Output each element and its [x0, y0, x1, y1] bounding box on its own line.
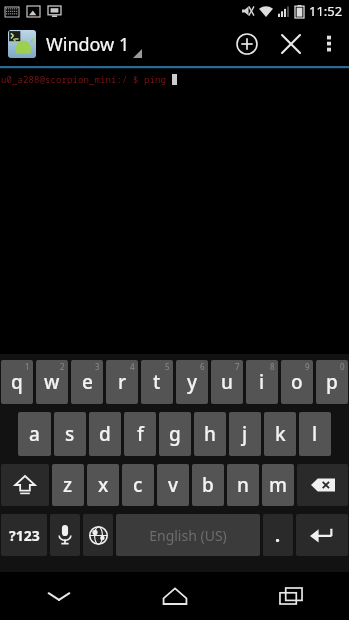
staticText: h: [204, 421, 216, 447]
button[interactable]: Shift: [1, 464, 49, 506]
staticText: 11:52: [309, 2, 343, 20]
staticText: 2: [60, 361, 65, 372]
staticText: 5: [165, 361, 170, 372]
button[interactable]: b: [192, 464, 224, 506]
staticText: 3: [95, 361, 100, 372]
button[interactable]: m: [262, 464, 294, 506]
staticText: d: [99, 421, 111, 447]
button[interactable]: Voice input: [50, 514, 80, 556]
button[interactable]: Enter: [296, 514, 348, 556]
staticText: i: [259, 369, 265, 395]
staticText: b: [202, 472, 214, 498]
button[interactable]: u0_a288@scorpion_mini:/ $ ping: [0, 69, 349, 354]
staticText: x: [98, 472, 109, 498]
button[interactable]: i: [246, 360, 278, 404]
button[interactable]: New window: [225, 22, 269, 66]
button[interactable]: a: [18, 412, 51, 456]
staticText: t: [153, 369, 161, 395]
button[interactable]: ?123: [1, 514, 47, 556]
staticText: c: [133, 472, 143, 498]
staticText: g: [169, 421, 181, 447]
button[interactable]: u: [211, 360, 243, 404]
staticText: e: [82, 369, 93, 395]
staticText: z: [63, 472, 73, 498]
staticText: 1: [25, 361, 30, 372]
staticText: y: [187, 369, 198, 395]
button[interactable]: r: [106, 360, 138, 404]
button[interactable]: n: [227, 464, 259, 506]
staticText: w: [44, 369, 60, 395]
button[interactable]: Window 1: [6, 26, 144, 62]
staticText: n: [237, 472, 249, 498]
button[interactable]: z: [52, 464, 84, 506]
button[interactable]: Home: [117, 572, 233, 620]
button[interactable]: q: [1, 360, 33, 404]
staticText: 6: [200, 361, 205, 372]
staticText: ?123: [9, 526, 40, 545]
button[interactable]: More options: [313, 22, 345, 66]
staticText: English (US): [149, 526, 227, 545]
staticText: 4: [130, 361, 135, 372]
button[interactable]: l: [299, 412, 331, 456]
staticText: v: [168, 472, 179, 498]
staticText: m: [269, 472, 287, 498]
button[interactable]: j: [229, 412, 261, 456]
button[interactable]: Change language: [83, 514, 113, 556]
button[interactable]: Backspace: [297, 464, 348, 506]
button[interactable]: .: [263, 514, 293, 556]
button[interactable]: e: [71, 360, 103, 404]
button[interactable]: k: [264, 412, 296, 456]
button[interactable]: t: [141, 360, 173, 404]
button[interactable]: Recent apps: [233, 572, 349, 620]
staticText: u0_a288@scorpion_mini:/ $ ping: [1, 73, 172, 85]
button[interactable]: w: [36, 360, 68, 404]
staticText: j: [242, 421, 248, 447]
staticText: r: [118, 369, 127, 395]
staticText: f: [137, 421, 144, 447]
staticText: 9: [305, 361, 310, 372]
button[interactable]: s: [54, 412, 86, 456]
staticText: 8: [270, 361, 275, 372]
staticText: q: [11, 369, 23, 395]
button[interactable]: Hide keyboard: [0, 572, 117, 620]
button[interactable]: o: [281, 360, 313, 404]
button[interactable]: English (US): [116, 514, 260, 556]
button[interactable]: f: [124, 412, 156, 456]
button[interactable]: p: [316, 360, 348, 404]
button[interactable]: d: [89, 412, 121, 456]
button[interactable]: v: [157, 464, 189, 506]
button[interactable]: g: [159, 412, 191, 456]
staticText: l: [312, 421, 318, 447]
staticText: p: [326, 369, 338, 395]
button[interactable]: y: [176, 360, 208, 404]
staticText: 7: [235, 361, 240, 372]
button[interactable]: Close window: [269, 22, 313, 66]
button[interactable]: h: [194, 412, 226, 456]
staticText: a: [29, 421, 40, 447]
staticText: 0: [340, 361, 345, 372]
staticText: k: [275, 421, 286, 447]
staticText: s: [65, 421, 75, 447]
staticText: u: [221, 369, 233, 395]
staticText: .: [275, 523, 281, 548]
button[interactable]: c: [122, 464, 154, 506]
staticText: o: [291, 369, 303, 395]
button[interactable]: x: [87, 464, 119, 506]
staticText: Window 1: [46, 32, 130, 57]
